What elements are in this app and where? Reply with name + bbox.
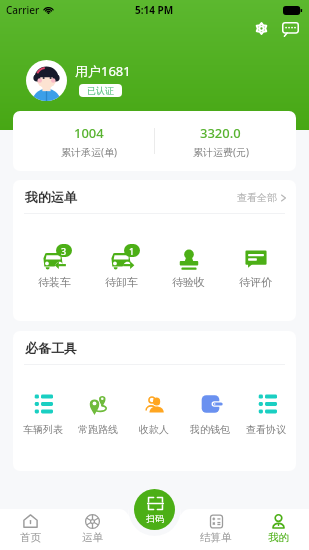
staticText: 待装车: [38, 275, 71, 289]
staticText: 运单: [82, 531, 103, 544]
staticText: 待卸车: [105, 275, 138, 289]
button[interactable]: 收款人: [126, 394, 182, 436]
staticText: 首页: [20, 531, 41, 544]
staticText: 待验收: [172, 275, 205, 289]
staticText: Carrier: [6, 3, 40, 17]
button[interactable]: 常跑路线: [70, 394, 126, 436]
staticText: 结算单: [200, 531, 232, 544]
button[interactable]: 我的钱包: [182, 394, 238, 436]
button[interactable]: 3: [20, 248, 88, 289]
staticText: 累计承运(单): [61, 145, 117, 159]
staticText: 扫码: [146, 513, 164, 524]
button[interactable]: 待评价: [222, 248, 289, 289]
staticText: 1: [129, 245, 135, 257]
button[interactable]: 结算单: [185, 509, 247, 550]
staticText: 累计运费(元): [193, 145, 249, 159]
staticText: 3: [61, 245, 67, 257]
staticText: 我的运单: [25, 189, 77, 205]
button[interactable]: 我的: [247, 509, 309, 550]
button[interactable]: 查看协议: [238, 394, 294, 436]
staticText: 用户1681: [75, 62, 131, 80]
staticText: 车辆列表: [23, 423, 63, 436]
button[interactable]: Profile avatar: [26, 60, 67, 101]
staticText: 常跑路线: [78, 423, 118, 436]
staticText: 我的钱包: [190, 423, 230, 436]
button[interactable]: Settings: [249, 16, 274, 41]
staticText: 查看全部: [237, 191, 277, 204]
button[interactable]: 3320.0: [155, 111, 286, 171]
button[interactable]: 运单: [61, 509, 123, 550]
button[interactable]: 车辆列表: [15, 394, 70, 436]
staticText: 1004: [74, 124, 104, 142]
staticText: 必备工具: [25, 340, 77, 356]
staticText: 3320.0: [200, 124, 241, 142]
button[interactable]: 首页: [0, 509, 61, 550]
button[interactable]: 查看全部: [229, 185, 296, 210]
staticText: 查看协议: [246, 423, 286, 436]
button[interactable]: 扫码 Scan: [134, 489, 175, 530]
staticText: 5:14 PM: [135, 3, 174, 17]
button[interactable]: 已认证: [79, 84, 122, 97]
staticText: 收款人: [139, 423, 169, 436]
button[interactable]: Messages: [277, 16, 303, 42]
staticText: 已认证: [87, 85, 114, 96]
button[interactable]: 1004: [23, 111, 154, 171]
button[interactable]: 待验收: [155, 248, 222, 289]
staticText: 我的: [268, 531, 289, 544]
button[interactable]: 1: [88, 248, 155, 289]
staticText: 待评价: [239, 275, 272, 289]
